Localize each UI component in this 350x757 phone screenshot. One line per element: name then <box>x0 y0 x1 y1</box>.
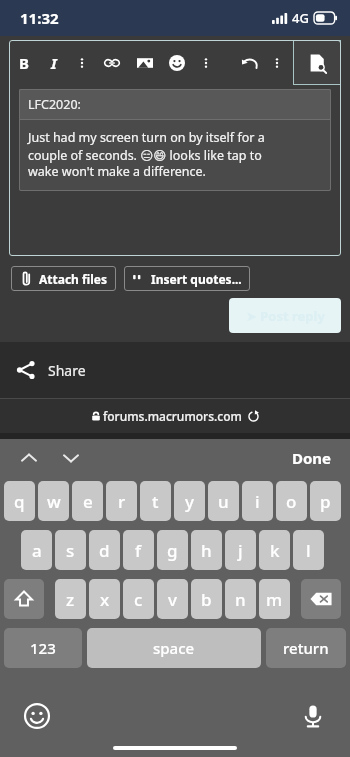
button[interactable]: More text options <box>69 40 95 85</box>
button[interactable]: l <box>293 530 324 570</box>
button[interactable]: More options <box>193 40 219 85</box>
button[interactable]: space <box>87 628 261 668</box>
staticText: I <box>51 53 57 73</box>
staticText: q <box>14 490 25 513</box>
staticText: z <box>66 588 75 611</box>
button[interactable]: Done <box>288 444 336 472</box>
staticText: j <box>238 539 243 562</box>
staticText: k <box>270 539 280 562</box>
staticText: i <box>255 490 260 513</box>
staticText: u <box>218 490 229 513</box>
staticText: g <box>167 539 178 562</box>
staticText: a <box>32 539 42 562</box>
button[interactable]: Insert image <box>129 40 161 85</box>
button[interactable]: Dictation <box>298 701 328 731</box>
staticText: Done <box>292 448 332 468</box>
staticText: f <box>135 539 142 562</box>
staticText: t <box>152 490 159 513</box>
button[interactable]: h <box>191 530 222 570</box>
button[interactable]: k <box>259 530 290 570</box>
staticText: Share <box>48 361 86 380</box>
button[interactable]: Next field <box>56 443 86 473</box>
button[interactable]: Preview <box>293 40 341 85</box>
button[interactable]: Previous field <box>14 443 44 473</box>
button[interactable]: d <box>89 530 120 570</box>
button[interactable]: Insert emoji <box>161 40 193 85</box>
button[interactable]: return <box>266 628 346 668</box>
button[interactable]: b <box>191 579 222 619</box>
staticText: c <box>134 588 143 611</box>
button[interactable]: Shift <box>4 579 44 619</box>
button[interactable]: o <box>276 481 307 521</box>
button[interactable]: m <box>259 579 290 619</box>
staticText: w <box>47 490 61 513</box>
button[interactable]: p <box>310 481 341 521</box>
button[interactable]: Attach files <box>19 266 108 291</box>
staticText: B <box>19 53 29 73</box>
staticText: Just had my screen turn on by itself for… <box>28 129 265 180</box>
button[interactable]: More actions <box>265 40 289 85</box>
staticText: l <box>306 539 311 562</box>
button[interactable]: 123 <box>4 628 82 668</box>
button[interactable]: j <box>225 530 256 570</box>
button[interactable]: g <box>157 530 188 570</box>
other: Shift <box>13 588 35 610</box>
other: Backspace <box>309 587 333 611</box>
staticText: b <box>201 588 212 611</box>
staticText: v <box>168 588 177 611</box>
button[interactable]: w <box>38 481 69 521</box>
staticText: 123 <box>30 638 56 658</box>
staticText: d <box>99 539 110 562</box>
staticText: return <box>283 638 329 658</box>
staticText: ➤ Post reply <box>246 307 325 325</box>
staticText: space <box>153 638 195 658</box>
button[interactable]: forums.macrumors.com <box>0 399 350 433</box>
button[interactable]: Backspace <box>301 579 341 619</box>
button[interactable]: q <box>4 481 35 521</box>
button[interactable]: u <box>208 481 239 521</box>
staticText: r <box>118 490 126 513</box>
staticText: o <box>286 490 297 513</box>
button[interactable]: v <box>157 579 188 619</box>
staticText: Attach files <box>39 271 108 287</box>
staticText: 11:32 <box>20 8 59 28</box>
button[interactable]: r <box>106 481 137 521</box>
button[interactable]: ➤ Post reply <box>229 298 341 333</box>
button[interactable]: x <box>89 579 120 619</box>
staticText: n <box>235 588 246 611</box>
staticText: x <box>100 588 110 611</box>
button[interactable]: e <box>72 481 103 521</box>
button[interactable]: Share <box>0 342 350 398</box>
staticText: y <box>185 490 194 513</box>
button[interactable]: i <box>242 481 273 521</box>
button[interactable]: z <box>55 579 86 619</box>
staticText: 4G <box>292 9 309 27</box>
staticText: Insert quotes... <box>151 271 242 287</box>
button[interactable]: Undo <box>235 40 265 85</box>
button[interactable]: I <box>39 40 69 85</box>
button[interactable]: c <box>123 579 154 619</box>
button[interactable]: Insert link <box>95 40 129 85</box>
staticText: LFC2020: <box>28 96 81 113</box>
button[interactable]: a <box>21 530 52 570</box>
button[interactable]: n <box>225 579 256 619</box>
staticText: p <box>320 490 331 513</box>
button[interactable]: Insert quotes... <box>132 266 242 291</box>
staticText: s <box>66 539 75 562</box>
button[interactable]: s <box>55 530 86 570</box>
button[interactable]: f <box>123 530 154 570</box>
button[interactable]: B <box>9 40 39 85</box>
staticText: forums.macrumors.com <box>103 408 242 424</box>
staticText: e <box>83 490 93 513</box>
button[interactable]: t <box>140 481 171 521</box>
button[interactable]: Emoji keyboard <box>22 701 52 731</box>
button[interactable]: y <box>174 481 205 521</box>
staticText: h <box>201 539 212 562</box>
staticText: m <box>266 588 283 611</box>
